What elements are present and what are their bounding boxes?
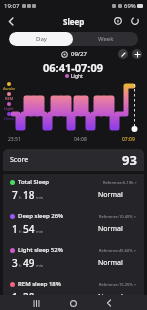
staticText: Score	[10, 155, 29, 165]
button[interactable]: Day	[9, 32, 73, 46]
staticText: Awake	[3, 86, 16, 91]
staticText: Sleep	[63, 16, 85, 27]
staticText: h	[18, 229, 23, 234]
staticText: 07:09	[122, 136, 135, 143]
staticText: Reference:15-25% >	[99, 282, 137, 287]
staticText: Week	[98, 35, 114, 43]
staticText: Reference:6-10h >	[103, 180, 137, 185]
staticText: 06:41-07:09	[43, 60, 104, 72]
staticText: 1	[12, 290, 18, 304]
staticText: Normal	[98, 292, 123, 302]
staticText: 7	[12, 188, 18, 202]
button[interactable]: Score	[3, 149, 144, 171]
staticText: Light sleep 52%	[18, 246, 63, 254]
button[interactable]: Deep sleep 26%	[3, 208, 144, 242]
button[interactable]	[66, 296, 80, 310]
staticText: Deep	[4, 116, 14, 121]
button[interactable]	[29, 296, 43, 310]
staticText: 04:08	[74, 136, 87, 143]
staticText: Normal	[98, 258, 123, 268]
button[interactable]	[118, 49, 128, 59]
staticText: Normal	[98, 190, 123, 200]
staticText: 23:51	[8, 136, 21, 143]
staticText: Reference:45-60% >	[99, 248, 137, 253]
staticText: min	[35, 195, 44, 200]
staticText: 3	[12, 256, 18, 270]
button[interactable]	[112, 15, 124, 27]
staticText: 09/27	[71, 50, 87, 58]
button[interactable]: Total Sleep	[3, 174, 144, 208]
button[interactable]: 09/27	[61, 50, 87, 58]
staticText: min	[35, 229, 44, 234]
button[interactable]	[4, 14, 18, 28]
staticText: REM	[5, 96, 14, 101]
staticText: 69%	[124, 2, 136, 10]
button[interactable]	[129, 15, 141, 27]
staticText: Reference:10-40% >	[99, 214, 137, 219]
button[interactable]	[102, 296, 116, 310]
staticText: 54	[23, 222, 35, 236]
staticText: 19:07	[4, 2, 20, 10]
staticText: REM sleep 18%	[18, 280, 61, 288]
staticText: Light	[71, 73, 83, 80]
button[interactable]: REM sleep 18%	[3, 276, 144, 310]
button[interactable]: Week	[73, 32, 138, 46]
staticText: Light	[4, 106, 14, 111]
staticText: 18	[23, 188, 35, 202]
button[interactable]: Light sleep 52%	[3, 242, 144, 276]
staticText: 20	[23, 290, 35, 304]
staticText: min	[35, 297, 44, 302]
button[interactable]	[132, 49, 142, 59]
staticText: Day	[36, 35, 47, 43]
staticText: 1	[12, 222, 18, 236]
staticText: Total Sleep	[18, 178, 50, 186]
staticText: Deep sleep 26%	[18, 212, 64, 220]
staticText: h	[18, 263, 23, 268]
staticText: 93	[122, 151, 137, 169]
staticText: Normal	[98, 224, 123, 234]
staticText: min	[35, 263, 44, 268]
staticText: 49	[23, 256, 35, 270]
staticText: h	[18, 195, 23, 200]
